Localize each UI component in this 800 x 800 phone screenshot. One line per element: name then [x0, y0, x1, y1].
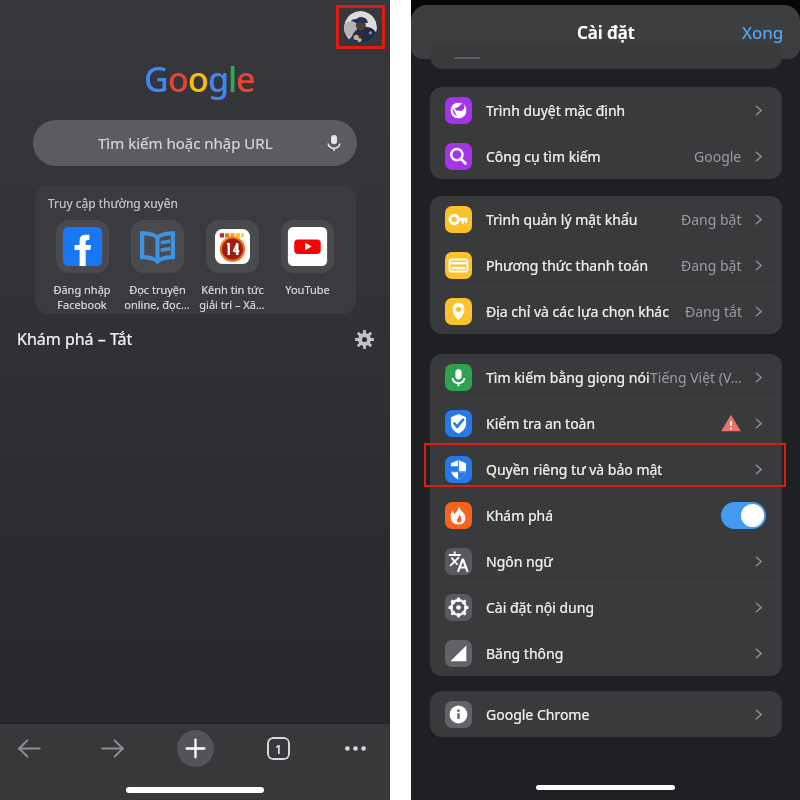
button[interactable]: Tìm kiếm bằng giọng nói [430, 354, 782, 400]
staticText: Trình duyệt mặc định [486, 101, 626, 120]
button[interactable]: Đăng nhập [48, 220, 116, 312]
button[interactable]: Công cụ tìm kiếm [430, 133, 782, 179]
button[interactable]: Ngôn ngữ [430, 538, 782, 584]
button[interactable]: YouTube [273, 220, 341, 297]
staticText: Đang bật [681, 256, 742, 275]
staticText: Kênh tin tức [201, 282, 264, 297]
staticText: Tìm kiếm hoặc nhập URL [98, 133, 273, 153]
staticText: l [228, 56, 236, 102]
staticText: Truy cập thường xuyên [48, 195, 178, 211]
button[interactable]: Google Chrome [430, 691, 782, 737]
button[interactable]: Tabs [234, 724, 312, 772]
staticText: Xong [742, 21, 784, 44]
button[interactable]: Settings [351, 326, 377, 352]
button[interactable]: Kênh tin tức [198, 220, 266, 312]
staticText: giải trí – Xã… [199, 297, 265, 312]
staticText: Quyền riêng tư và bảo mật [486, 460, 663, 479]
staticText: Facebook [57, 297, 107, 312]
staticText: Google [694, 147, 742, 166]
staticText: Đọc truyện [129, 282, 186, 297]
button[interactable]: Forward [78, 724, 156, 772]
staticText: Công cụ tìm kiếm [486, 147, 601, 166]
staticText: Phương thức thanh toán [486, 256, 649, 275]
button[interactable]: New tab [177, 730, 214, 767]
staticText: Tìm kiếm bằng giọng nói [486, 368, 650, 387]
button[interactable]: Quyền riêng tư và bảo mật [430, 446, 782, 492]
staticText: Tiếng Việt (V… [650, 368, 742, 387]
staticText: Băng thông [486, 644, 564, 663]
button[interactable]: Kiểm tra an toàn [430, 400, 782, 446]
button[interactable]: Back [0, 724, 78, 772]
staticText: o [188, 56, 208, 102]
staticText: g [208, 56, 228, 102]
button[interactable]: Địa chỉ và các lựa chọn khác [430, 288, 782, 334]
button[interactable]: Trình quản lý mật khẩu [430, 196, 782, 242]
staticText: Cài đặt nội dung [486, 598, 595, 617]
button[interactable]: Trình duyệt mặc định [430, 87, 782, 133]
staticText: YouTube [285, 282, 330, 297]
staticText: Đăng nhập [53, 282, 111, 297]
staticText: Khám phá – Tắt [17, 328, 133, 350]
staticText: Đang bật [681, 210, 742, 229]
button[interactable]: Khám phá [430, 492, 782, 538]
button[interactable]: Phương thức thanh toán [430, 242, 782, 288]
staticText: G [144, 56, 168, 102]
button[interactable]: Đọc truyện [123, 220, 191, 312]
staticText: Trình quản lý mật khẩu [486, 210, 638, 229]
button[interactable]: More [312, 724, 390, 772]
staticText: 1 [275, 741, 282, 757]
button[interactable]: Băng thông [430, 630, 782, 676]
staticText: Cài đặt [577, 21, 635, 44]
staticText: Đang tắt [685, 302, 742, 321]
staticText: Kiểm tra an toàn [486, 414, 596, 433]
button[interactable]: Account [336, 5, 385, 49]
staticText: o [168, 56, 188, 102]
staticText: Khám phá [486, 506, 554, 525]
button[interactable]: Search or type URL [33, 120, 357, 166]
button[interactable]: Xong [736, 15, 790, 50]
staticText: Google Chrome [486, 705, 590, 724]
button[interactable]: Cài đặt nội dung [430, 584, 782, 630]
staticText: Ngôn ngữ [486, 552, 553, 571]
staticText: Địa chỉ và các lựa chọn khác [486, 302, 669, 321]
staticText: e [236, 56, 255, 102]
staticText: online, đọc… [124, 297, 190, 312]
